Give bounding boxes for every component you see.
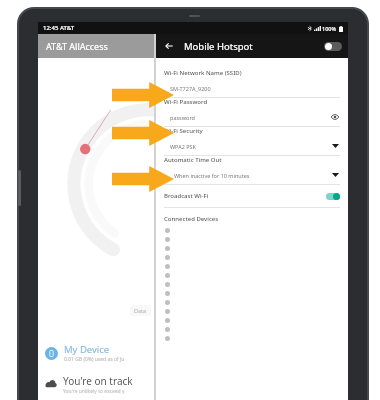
staticText: password bbox=[170, 114, 195, 121]
button[interactable]: AT&T AllAccess bbox=[38, 34, 154, 58]
staticText: You're unlikely to exceed y bbox=[63, 388, 125, 395]
staticText: Connected Devices bbox=[164, 215, 219, 223]
staticText: WPA2 PSK bbox=[170, 143, 197, 150]
staticText: AT&T AllAccess bbox=[46, 40, 108, 52]
button[interactable]: Wi-Fi Password bbox=[156, 98, 348, 126]
staticText: My Device bbox=[64, 343, 110, 356]
staticText: 0.01 GB (0%) used as of Ju bbox=[64, 356, 125, 363]
button[interactable]: Wi-Fi Security bbox=[156, 127, 348, 155]
staticText: Mobile Hotspot bbox=[184, 40, 253, 53]
staticText: Data bbox=[134, 307, 147, 314]
button[interactable]: Wi-Fi Network Name (SSID) bbox=[156, 69, 348, 97]
button[interactable]: Mobile Hotspot toggle bbox=[324, 42, 342, 51]
staticText: Wi-Fi Security bbox=[164, 127, 203, 135]
staticText: Automatic Time Out bbox=[164, 156, 222, 164]
button[interactable]: Automatic Time Out bbox=[156, 156, 348, 184]
staticText: 100% bbox=[322, 25, 337, 32]
staticText: Broadcast Wi-Fi bbox=[164, 192, 209, 200]
staticText: Wi-Fi Network Name (SSID) bbox=[164, 69, 242, 77]
button[interactable]: Open dropdown bbox=[330, 141, 340, 151]
button[interactable]: Show password bbox=[330, 112, 340, 122]
button[interactable]: You're on track bbox=[38, 368, 154, 400]
button[interactable]: My Device bbox=[38, 338, 154, 368]
staticText: SM-T727A_9200 bbox=[170, 85, 211, 92]
staticText: You're on track bbox=[63, 374, 133, 388]
button[interactable]: Open dropdown bbox=[330, 170, 340, 180]
staticText: When inactive for 10 minutes bbox=[174, 172, 250, 179]
button[interactable]: Back bbox=[162, 39, 176, 53]
button[interactable]: Broadcast Wi-Fi bbox=[156, 185, 348, 207]
staticText: Wi-Fi Password bbox=[164, 98, 208, 106]
staticText: 12:45 AT&T bbox=[43, 24, 75, 32]
